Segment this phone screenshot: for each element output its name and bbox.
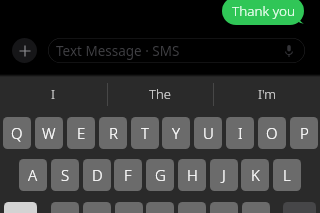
button[interactable]: I — [0, 74, 106, 110]
button[interactable]: Q — [3, 117, 31, 149]
button[interactable]: W — [35, 117, 63, 149]
button[interactable]: L — [273, 159, 301, 191]
staticText: Text Message · SMS — [56, 42, 180, 60]
staticText: U — [203, 123, 214, 143]
staticText: S — [61, 165, 70, 185]
staticText: The — [149, 85, 171, 103]
button[interactable]: H — [178, 159, 206, 191]
button[interactable]: J — [210, 159, 238, 191]
staticText: T — [141, 123, 149, 143]
staticText: H — [187, 165, 198, 185]
staticText: I — [238, 123, 243, 143]
button[interactable]: Add attachment — [12, 38, 37, 63]
button[interactable]: Z — [51, 202, 79, 213]
staticText: P — [300, 123, 309, 143]
staticText: Thank you — [232, 2, 295, 20]
button[interactable]: X — [83, 202, 111, 213]
staticText: F — [124, 165, 132, 185]
staticText: E — [77, 123, 86, 143]
staticText: O — [266, 123, 278, 143]
button[interactable]: Thank you — [222, 0, 304, 25]
staticText: K — [251, 165, 260, 185]
button[interactable]: The — [106, 74, 213, 110]
button[interactable]: Y — [162, 117, 190, 149]
staticText: Y — [172, 123, 181, 143]
button[interactable]: A — [19, 159, 47, 191]
button[interactable]: T — [131, 117, 159, 149]
staticText: I'm — [258, 85, 276, 103]
button[interactable]: E — [67, 117, 95, 149]
button[interactable]: K — [241, 159, 269, 191]
button[interactable]: I — [226, 117, 254, 149]
button[interactable]: B — [178, 202, 206, 213]
staticText: L — [283, 165, 291, 185]
button[interactable]: Shift — [4, 202, 37, 213]
button[interactable]: M — [242, 202, 270, 213]
button[interactable]: S — [51, 159, 79, 191]
staticText: G — [155, 165, 166, 185]
button[interactable]: Text Message · SMS — [48, 38, 305, 63]
button[interactable]: C — [115, 202, 143, 213]
other: Voice input — [285, 45, 293, 57]
staticText: Q — [11, 123, 23, 143]
button[interactable]: D — [83, 159, 111, 191]
button[interactable]: R — [99, 117, 127, 149]
button[interactable]: Backspace — [283, 202, 316, 213]
button[interactable]: O — [258, 117, 286, 149]
button[interactable]: U — [194, 117, 222, 149]
staticText: A — [28, 165, 38, 185]
staticText: I — [51, 85, 56, 103]
button[interactable]: I'm — [213, 74, 320, 110]
staticText: W — [42, 123, 56, 143]
button[interactable]: V — [146, 202, 174, 213]
button[interactable]: G — [146, 159, 174, 191]
button[interactable]: P — [290, 117, 318, 149]
button[interactable]: N — [210, 202, 238, 213]
staticText: D — [92, 165, 103, 185]
staticText: J — [222, 165, 226, 185]
staticText: R — [109, 123, 118, 143]
button[interactable]: F — [114, 159, 142, 191]
